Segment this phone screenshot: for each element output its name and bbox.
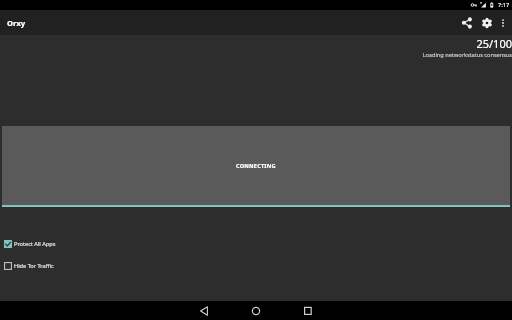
button[interactable]: Back xyxy=(181,301,227,320)
button[interactable]: Protect All Apps xyxy=(0,236,512,251)
staticText: Loading networkstatus consensus xyxy=(0,51,512,59)
staticText: Orxy xyxy=(7,18,26,28)
staticText: CONNECTING xyxy=(236,162,276,170)
button[interactable]: Settings xyxy=(471,10,503,35)
button[interactable]: Hide Tor Traffic xyxy=(0,258,512,273)
button[interactable]: Home xyxy=(233,301,279,320)
staticText: 25/100 xyxy=(0,36,512,51)
button[interactable]: CONNECTING xyxy=(2,126,510,205)
button[interactable]: Recents xyxy=(285,301,331,320)
staticText: Hide Tor Traffic xyxy=(14,262,54,270)
staticText: 7:17 xyxy=(498,1,510,9)
button[interactable]: More options xyxy=(492,10,512,35)
staticText: Protect All Apps xyxy=(14,240,56,248)
button[interactable]: Share xyxy=(449,10,484,35)
